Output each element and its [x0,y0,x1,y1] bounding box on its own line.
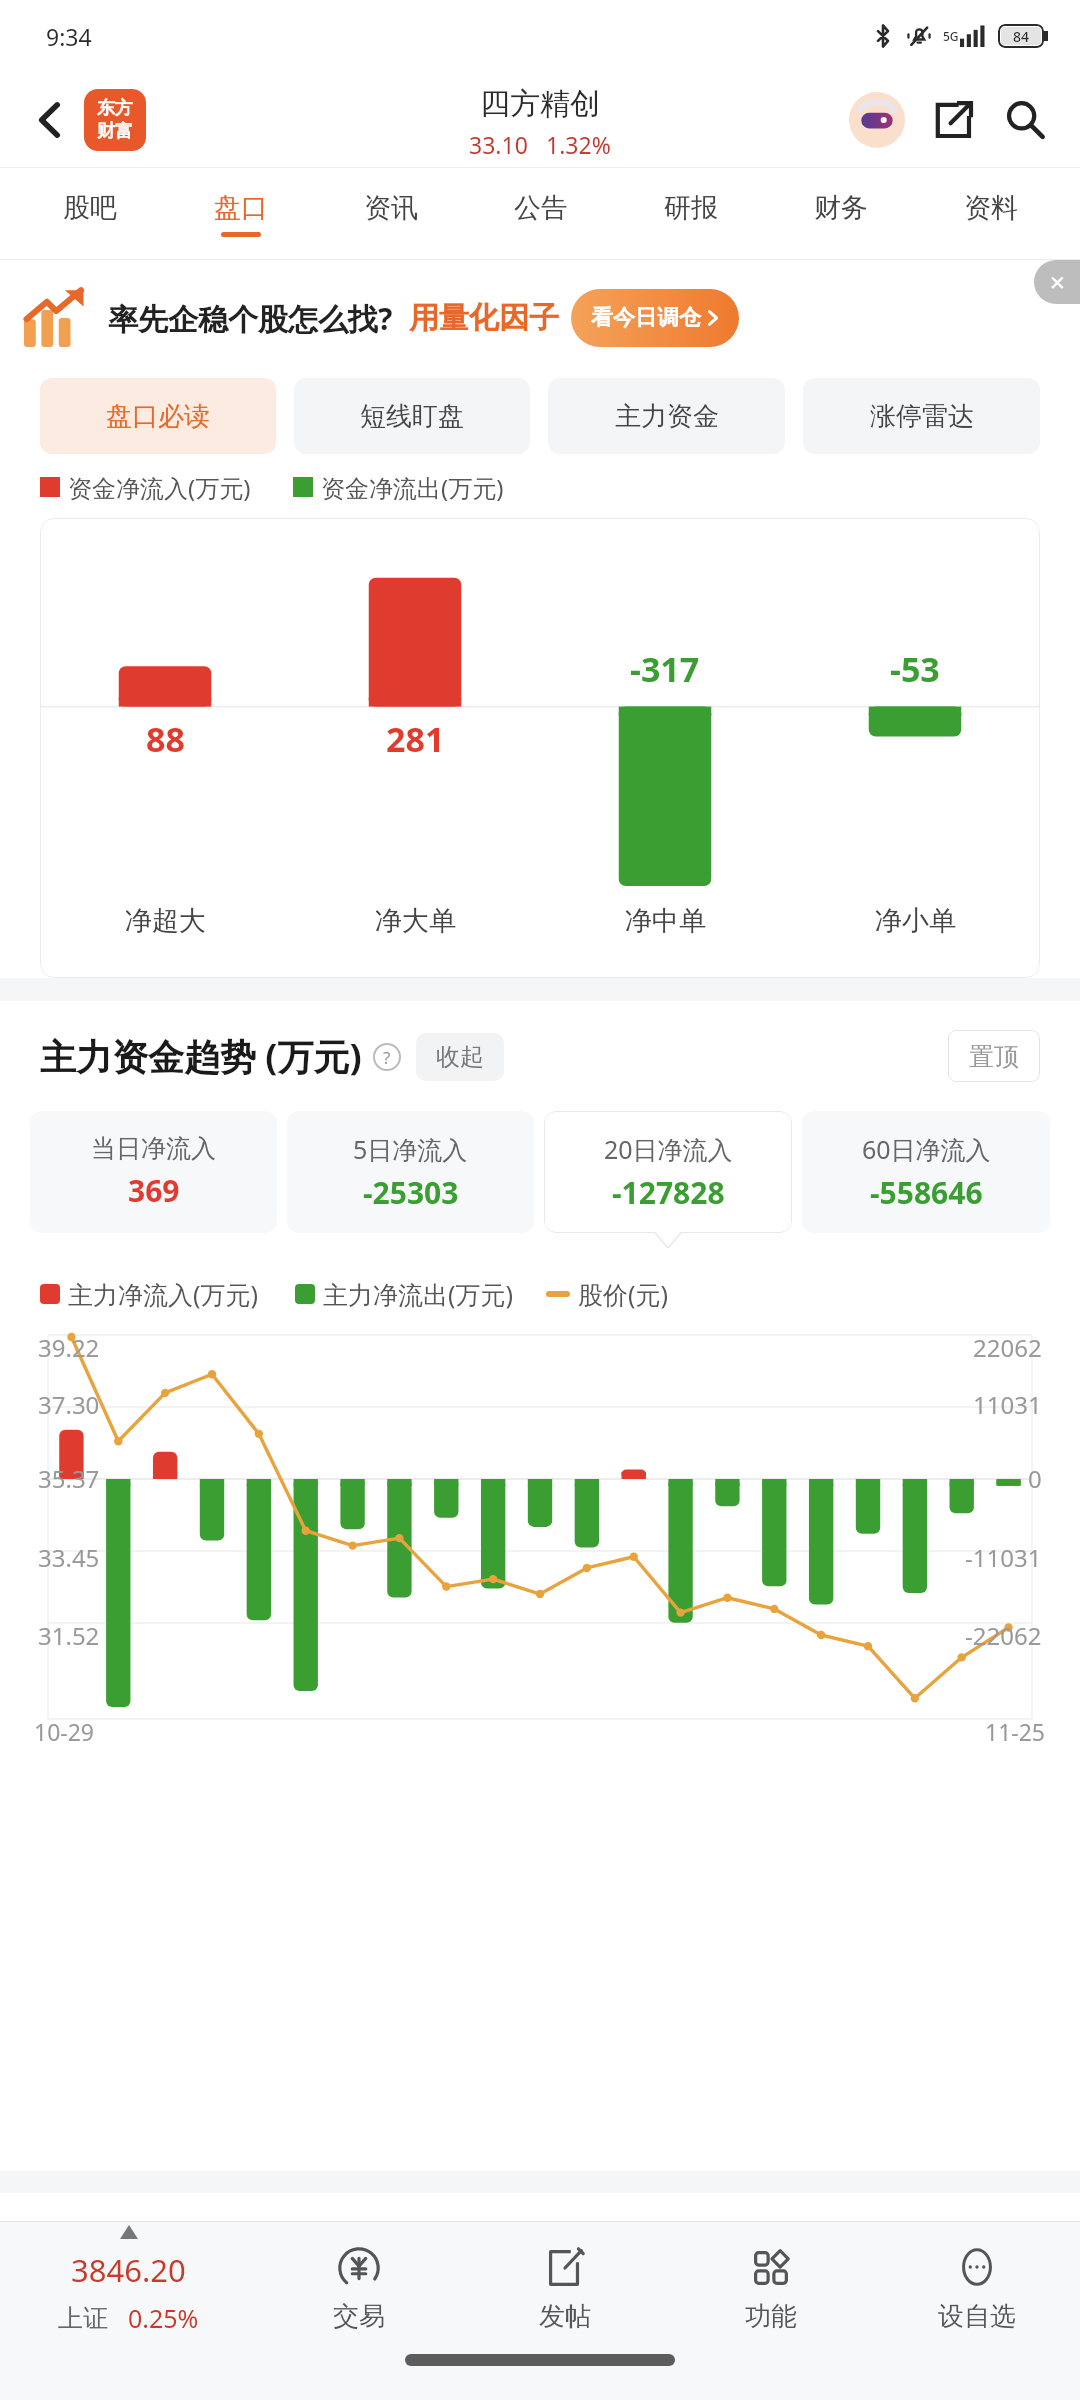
staticText: 33.45 [38,1541,100,1574]
button[interactable]: 主力资金 [548,378,785,454]
staticText: 11-25 [985,1716,1046,1747]
button[interactable]: 设自选 [874,2222,1080,2354]
staticText: -127828 [612,1172,725,1213]
staticText: -25303 [363,1172,459,1213]
staticText: 股价(元) [578,1277,669,1311]
button[interactable]: 收起 [416,1033,504,1081]
button[interactable]: 资讯 [316,168,466,260]
staticText: 5日净流入 [353,1132,468,1166]
button[interactable]: 看今日调仓 [571,289,739,347]
staticText: 资金净流出(万元) [321,471,504,504]
staticText: 公告 [514,191,568,225]
staticText: 交易 [333,2300,385,2333]
button[interactable]: Close ad [1034,260,1080,304]
button[interactable]: 盘口必读 [40,378,276,454]
staticText: 净大单 [375,904,456,938]
button[interactable]: Back [22,92,78,148]
staticText: 主力净流出(万元) [323,1277,514,1311]
staticText: 净中单 [625,904,706,938]
staticText: 资料 [964,191,1018,225]
staticText: 84 [1013,27,1030,45]
staticText: 资讯 [364,191,418,225]
staticText: 置顶 [969,1041,1019,1072]
staticText: 净超大 [125,904,206,938]
staticText: 35.37 [38,1462,100,1495]
staticText: 9:34 [46,21,92,52]
staticText: 20日净流入 [604,1132,733,1166]
staticText: 60日净流入 [862,1132,991,1166]
button[interactable]: 资料 [916,168,1066,260]
staticText: 股吧 [63,191,117,225]
staticText: 看今日调仓 [591,304,701,332]
button[interactable]: 东方财富 [84,89,146,151]
staticText: 22062 [973,1331,1042,1364]
button[interactable]: 率先企稳个股怎么找? [0,260,1080,376]
staticText: 资金净流入(万元) [68,471,251,504]
button[interactable]: 涨停雷达 [803,378,1040,454]
button[interactable]: 公告 [466,168,616,260]
button[interactable]: 研报 [616,168,766,260]
staticText: 37.30 [38,1388,100,1421]
staticText: -317 [630,646,700,692]
staticText: 设自选 [938,2300,1016,2333]
staticText: 369 [128,1170,180,1211]
staticText: 281 [386,716,445,762]
staticText: 88 [146,716,185,762]
staticText: 率先企稳个股怎么找? [108,298,393,339]
staticText: -53 [890,646,940,692]
button[interactable]: Search [994,89,1056,151]
staticText: 39.22 [38,1331,100,1364]
button[interactable]: 3846.20 [0,2222,256,2354]
staticText: 涨停雷达 [870,400,974,433]
staticText: 盘口必读 [106,400,210,433]
staticText: 研报 [664,191,718,225]
button[interactable]: AI assistant [846,89,908,151]
staticText: -11031 [965,1541,1042,1574]
button[interactable]: 盘口 [165,168,316,260]
staticText: 用量化因子 [409,299,559,337]
button[interactable]: Share [922,89,984,151]
staticText: ✕ [1049,271,1066,294]
button[interactable]: 60日净流入 [802,1111,1050,1233]
staticText: 31.52 [38,1619,100,1652]
staticText: 3846.20 [71,2249,186,2291]
button[interactable]: 发帖 [462,2222,668,2354]
staticText: 盘口 [214,191,268,225]
staticText: 0 [1028,1462,1042,1495]
button[interactable]: 置顶 [948,1030,1040,1082]
staticText: 功能 [745,2300,797,2333]
staticText: 当日净流入 [91,1133,216,1164]
staticText: 收起 [436,1042,484,1072]
staticText: 5G [943,28,959,44]
staticText: 财富 [97,120,133,143]
button[interactable]: Help [372,1042,402,1072]
staticText: 1.32% [546,129,611,160]
button[interactable]: 短线盯盘 [294,378,530,454]
staticText: 33.10 [469,129,528,160]
staticText: 东方 [97,97,133,120]
staticText: 主力净流入(万元) [68,1277,259,1311]
staticText: 发帖 [539,2300,591,2333]
staticText: 0.25% [128,2301,199,2335]
staticText: 短线盯盘 [360,400,464,433]
staticText: -22062 [965,1619,1042,1652]
staticText: 净小单 [875,904,956,938]
button[interactable]: 交易 [256,2222,462,2354]
button[interactable]: 20日净流入 [544,1111,792,1233]
button[interactable]: 当日净流入 [30,1111,277,1233]
staticText: -558646 [870,1172,983,1213]
staticText: 财务 [814,191,868,225]
button[interactable]: 财务 [766,168,916,260]
staticText: 10-29 [34,1716,95,1747]
staticText: 主力资金趋势 (万元) [40,1032,362,1081]
button[interactable]: 功能 [668,2222,874,2354]
staticText: 主力资金 [615,400,719,433]
staticText: 四方精创 [480,85,600,123]
staticText: ? [383,1046,391,1069]
button[interactable]: 5日净流入 [287,1111,534,1233]
button[interactable]: 股吧 [14,168,165,260]
staticText: 上证 [58,2303,108,2334]
staticText: 11031 [973,1388,1042,1421]
